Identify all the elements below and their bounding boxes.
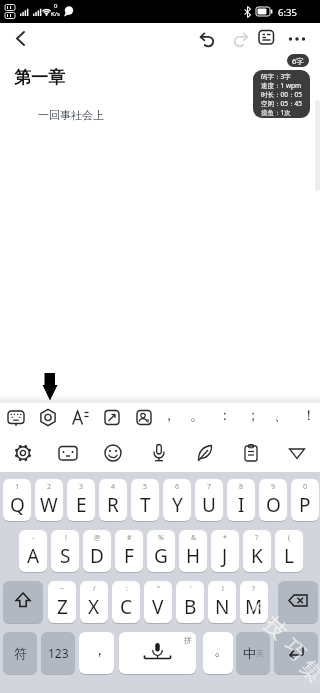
staticText: % <box>158 533 164 543</box>
staticText: * <box>223 533 227 543</box>
button[interactable]: 3 <box>67 479 95 521</box>
button[interactable]: ： <box>208 402 236 433</box>
staticText: 第一章 <box>14 67 65 88</box>
staticText: H <box>186 543 201 569</box>
button[interactable]: 9 <box>259 479 287 521</box>
button[interactable]: - <box>19 530 47 572</box>
staticText: K <box>251 543 263 569</box>
button[interactable]: @ <box>83 530 111 572</box>
staticText: A <box>27 543 40 569</box>
staticText: I <box>238 492 245 518</box>
button[interactable] <box>254 26 278 50</box>
staticText: 1 <box>15 482 20 492</box>
button[interactable]: ! <box>51 530 79 572</box>
button[interactable]: ' <box>176 581 204 623</box>
staticText: L <box>284 543 294 569</box>
staticText: 码字：3字 速度：1 wpm 时长：00：05 空闲：05：45 摸鱼：1次 <box>261 72 302 117</box>
button[interactable]: 123 <box>41 632 75 674</box>
button[interactable]: 、 <box>264 402 292 433</box>
button[interactable]: 拼 <box>119 632 196 674</box>
staticText: / <box>93 584 96 594</box>
button[interactable]: ， <box>79 632 114 674</box>
staticText: N <box>215 594 230 620</box>
button[interactable]: : <box>112 581 140 623</box>
staticText: 6:35 <box>278 6 297 19</box>
staticText: 9 <box>271 482 276 492</box>
button[interactable]: & <box>179 530 207 572</box>
button[interactable]: 7 <box>195 479 223 521</box>
button[interactable]: ； <box>236 402 264 433</box>
button[interactable]: 8 <box>227 479 255 521</box>
button[interactable]: / <box>80 581 108 623</box>
staticText: ! <box>222 584 224 594</box>
button[interactable] <box>3 581 43 623</box>
button[interactable]: 1 <box>3 479 31 521</box>
button[interactable] <box>227 27 251 51</box>
staticText: ！ <box>302 407 316 425</box>
staticText: 3 <box>79 482 84 492</box>
staticText: : <box>126 584 128 594</box>
button[interactable]: 符 <box>3 632 37 674</box>
button[interactable] <box>278 581 318 623</box>
staticText: 巧 <box>278 633 311 667</box>
button[interactable]: % <box>147 530 175 572</box>
staticText: X <box>88 594 100 620</box>
button[interactable]: 2 <box>35 479 63 521</box>
button[interactable]: ! <box>208 581 236 623</box>
button[interactable] <box>274 632 318 674</box>
staticText: ； <box>246 407 260 425</box>
button[interactable] <box>136 433 182 472</box>
button[interactable]: ！ <box>292 402 320 433</box>
button[interactable] <box>284 26 310 52</box>
staticText: 8 <box>239 482 244 492</box>
button[interactable] <box>228 433 274 472</box>
staticText: O <box>266 492 281 518</box>
staticText: Z <box>57 594 68 620</box>
staticText: ? <box>252 584 256 594</box>
button[interactable]: ~ <box>48 581 76 623</box>
button[interactable]: 。 <box>203 632 233 674</box>
button[interactable]: 4 <box>99 479 127 521</box>
staticText: 、 <box>274 407 288 425</box>
staticText: # <box>127 533 132 543</box>
button[interactable] <box>45 433 90 472</box>
staticText: 5 <box>143 482 148 492</box>
button[interactable]: ? <box>243 530 271 572</box>
staticText: 6 <box>175 482 180 492</box>
button[interactable] <box>8 25 34 51</box>
staticText: D <box>90 543 104 569</box>
staticText: ~ <box>60 584 65 594</box>
button[interactable]: * <box>211 530 239 572</box>
staticText: V <box>152 594 164 620</box>
button[interactable] <box>197 27 221 51</box>
staticText: Q <box>10 492 25 518</box>
staticText: 123 <box>48 645 69 661</box>
button[interactable] <box>274 433 320 472</box>
button[interactable] <box>0 433 45 472</box>
staticText: ? <box>255 533 259 543</box>
button[interactable]: 5 <box>131 479 159 521</box>
button[interactable]: 6 <box>163 479 191 521</box>
staticText: B <box>184 594 197 620</box>
staticText: T <box>140 492 151 518</box>
button[interactable] <box>90 433 136 472</box>
button[interactable] <box>182 433 228 472</box>
staticText: Y <box>172 492 183 518</box>
button[interactable]: ， <box>152 402 180 433</box>
button[interactable]: 。 <box>180 402 208 433</box>
button[interactable]: # <box>115 530 143 572</box>
staticText: 技 <box>259 611 292 645</box>
staticText: G <box>154 543 168 569</box>
button[interactable]: ? <box>240 581 268 623</box>
button[interactable]: " <box>144 581 172 623</box>
staticText: & <box>191 533 197 543</box>
staticText: ' <box>190 584 192 594</box>
button[interactable]: ( <box>275 530 303 572</box>
button[interactable]: 0 <box>291 479 319 521</box>
staticText: " <box>157 584 160 594</box>
staticText: ! <box>65 533 67 543</box>
staticText: 符 <box>14 645 27 661</box>
button[interactable]: 中 <box>236 632 270 674</box>
staticText: P <box>299 492 311 518</box>
staticText: E <box>76 492 87 518</box>
